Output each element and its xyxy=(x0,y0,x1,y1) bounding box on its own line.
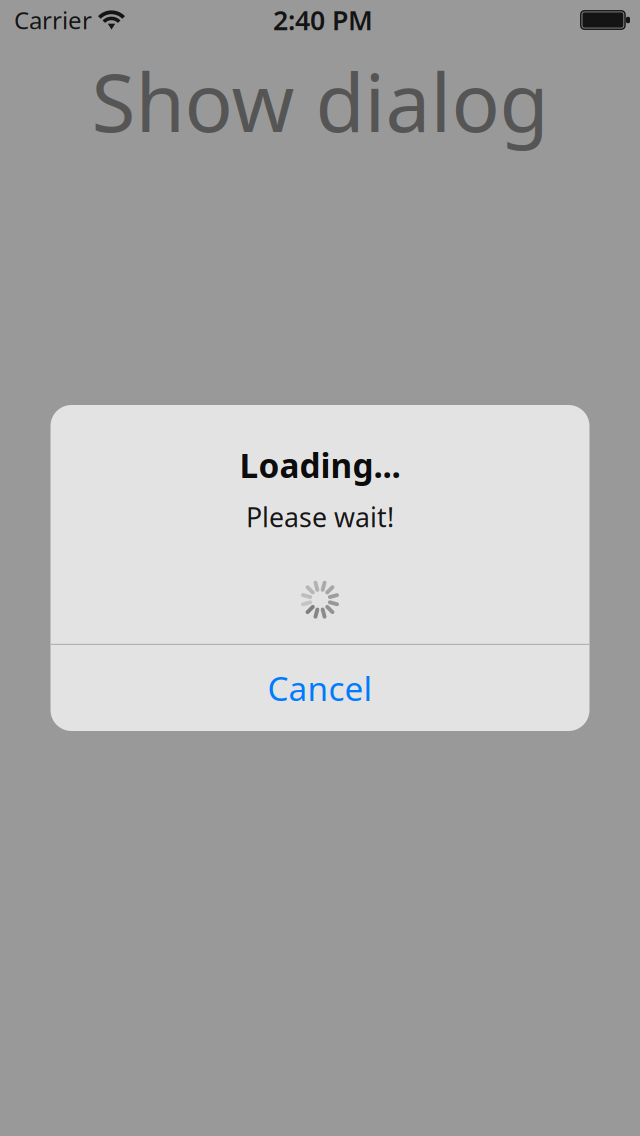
staticText: 2:40 PM xyxy=(273,2,373,38)
staticText: Show dialog xyxy=(91,48,548,154)
staticText: Carrier xyxy=(14,4,92,36)
staticText: Cancel xyxy=(267,666,372,710)
button[interactable]: Cancel xyxy=(50,645,589,731)
staticText: Loading... xyxy=(239,443,400,487)
button[interactable]: Show dialog xyxy=(0,40,640,149)
staticText: Please wait! xyxy=(246,499,394,535)
